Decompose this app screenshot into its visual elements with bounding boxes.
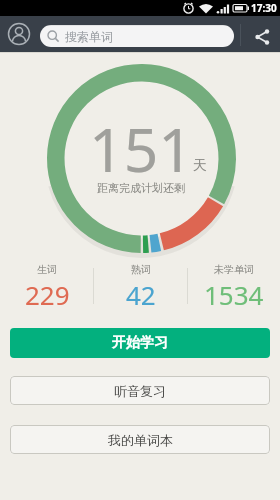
- staticText: 151: [41, 107, 241, 189]
- staticText: 开始学习: [112, 334, 168, 352]
- button[interactable]: 我的单词本: [10, 425, 270, 454]
- staticText: 天: [193, 157, 207, 175]
- staticText: 1534: [204, 277, 264, 312]
- button[interactable]: 开始学习: [10, 328, 270, 358]
- button[interactable]: 熟词: [94, 263, 187, 312]
- staticText: 距离完成计划还剩: [41, 181, 241, 195]
- button[interactable]: [250, 26, 270, 46]
- staticText: 搜索单词: [65, 29, 113, 44]
- button[interactable]: 生词: [0, 263, 94, 312]
- button[interactable]: [8, 23, 30, 45]
- staticText: 熟词: [131, 263, 151, 276]
- staticText: 17:30: [251, 1, 277, 15]
- staticText: 生词: [37, 263, 57, 276]
- staticText: 我的单词本: [108, 432, 173, 448]
- staticText: 听音复习: [114, 383, 166, 399]
- button[interactable]: 未学单词: [187, 263, 280, 312]
- staticText: 未学单词: [214, 263, 254, 276]
- button[interactable]: 听音复习: [10, 376, 270, 405]
- staticText: 229: [25, 277, 70, 312]
- button[interactable]: 搜索单词: [40, 25, 234, 47]
- staticText: 42: [126, 277, 156, 312]
